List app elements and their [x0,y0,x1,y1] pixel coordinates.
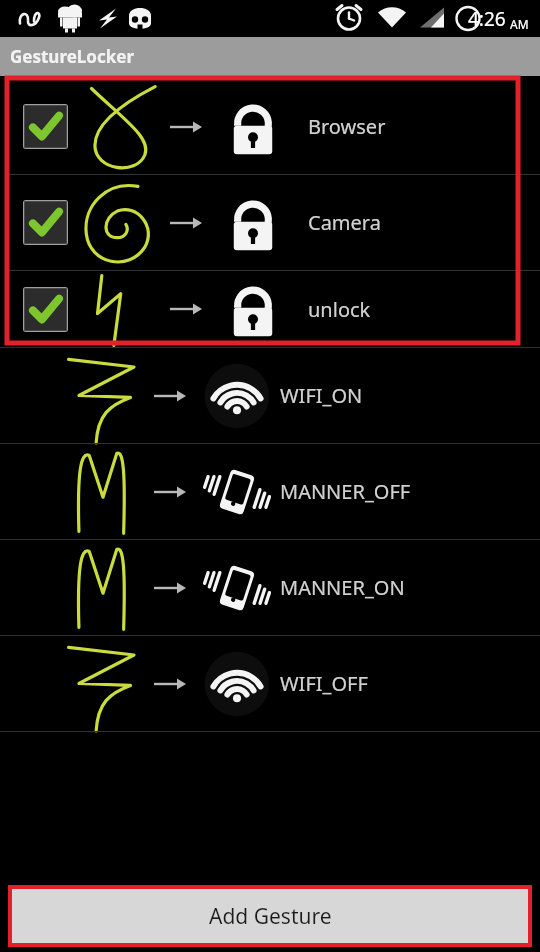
button[interactable]: MANNER_OFF [0,444,540,539]
staticText: 4:26 [468,6,506,32]
button[interactable]: WIFI_OFF [0,636,540,731]
staticText: WIFI_OFF [280,670,368,697]
button[interactable]: WIFI_ON [0,348,540,443]
button[interactable]: Toggle Camera [9,175,540,270]
staticText: WIFI_ON [280,382,363,409]
staticText: GestureLocker [10,45,135,68]
staticText: MANNER_ON [280,574,405,601]
staticText: AM [510,16,529,32]
button[interactable]: Toggle unlock [23,287,68,332]
button[interactable]: Toggle Browser [23,104,68,149]
staticText: MANNER_OFF [280,478,411,505]
button[interactable]: MANNER_ON [0,540,540,635]
staticText: Browser [308,113,386,140]
button[interactable]: Toggle unlock [9,271,540,347]
button[interactable]: Toggle Browser [9,79,540,174]
staticText: unlock [308,296,371,323]
button[interactable]: Add Gesture [12,889,528,943]
staticText: Add Gesture [209,902,332,931]
button[interactable]: Toggle Camera [23,200,68,245]
staticText: Camera [308,209,381,236]
